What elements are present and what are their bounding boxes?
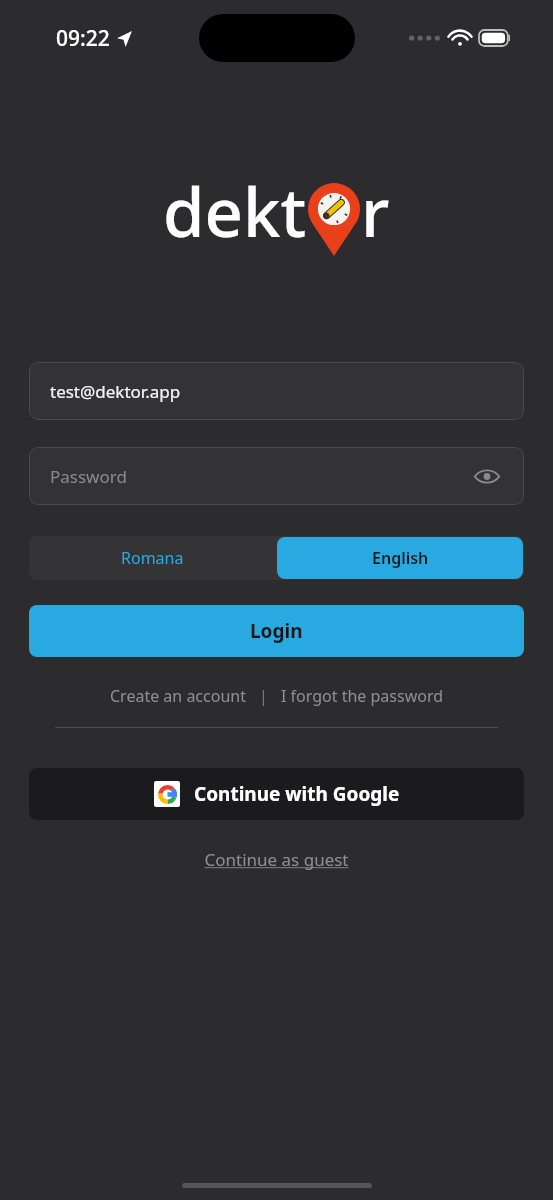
staticText: Create an account — [110, 685, 246, 707]
button[interactable]: Continue with Google — [29, 768, 524, 820]
button[interactable]: Romana — [29, 536, 276, 580]
staticText: dekt — [163, 165, 307, 256]
button[interactable]: English — [277, 537, 523, 579]
staticText: Continue as guest — [204, 848, 349, 871]
staticText: Continue with Google — [194, 781, 400, 807]
staticText: 09:22 — [56, 24, 110, 53]
button[interactable]: Create an account — [106, 679, 250, 713]
staticText: Password — [50, 465, 127, 488]
button[interactable]: test@dektor.app — [29, 362, 524, 420]
button[interactable]: Show password — [471, 460, 503, 492]
button[interactable]: Login — [29, 605, 524, 657]
staticText: test@dektor.app — [50, 380, 181, 403]
button[interactable]: I forgot the password — [277, 679, 448, 713]
staticText: English — [372, 547, 429, 569]
staticText: r — [361, 165, 390, 256]
staticText: I forgot the password — [281, 685, 444, 707]
staticText: Login — [250, 618, 303, 644]
button[interactable]: Password — [29, 447, 524, 505]
staticText: | — [259, 685, 268, 707]
button[interactable]: Continue as guest — [198, 842, 355, 877]
staticText: Romana — [121, 547, 184, 569]
